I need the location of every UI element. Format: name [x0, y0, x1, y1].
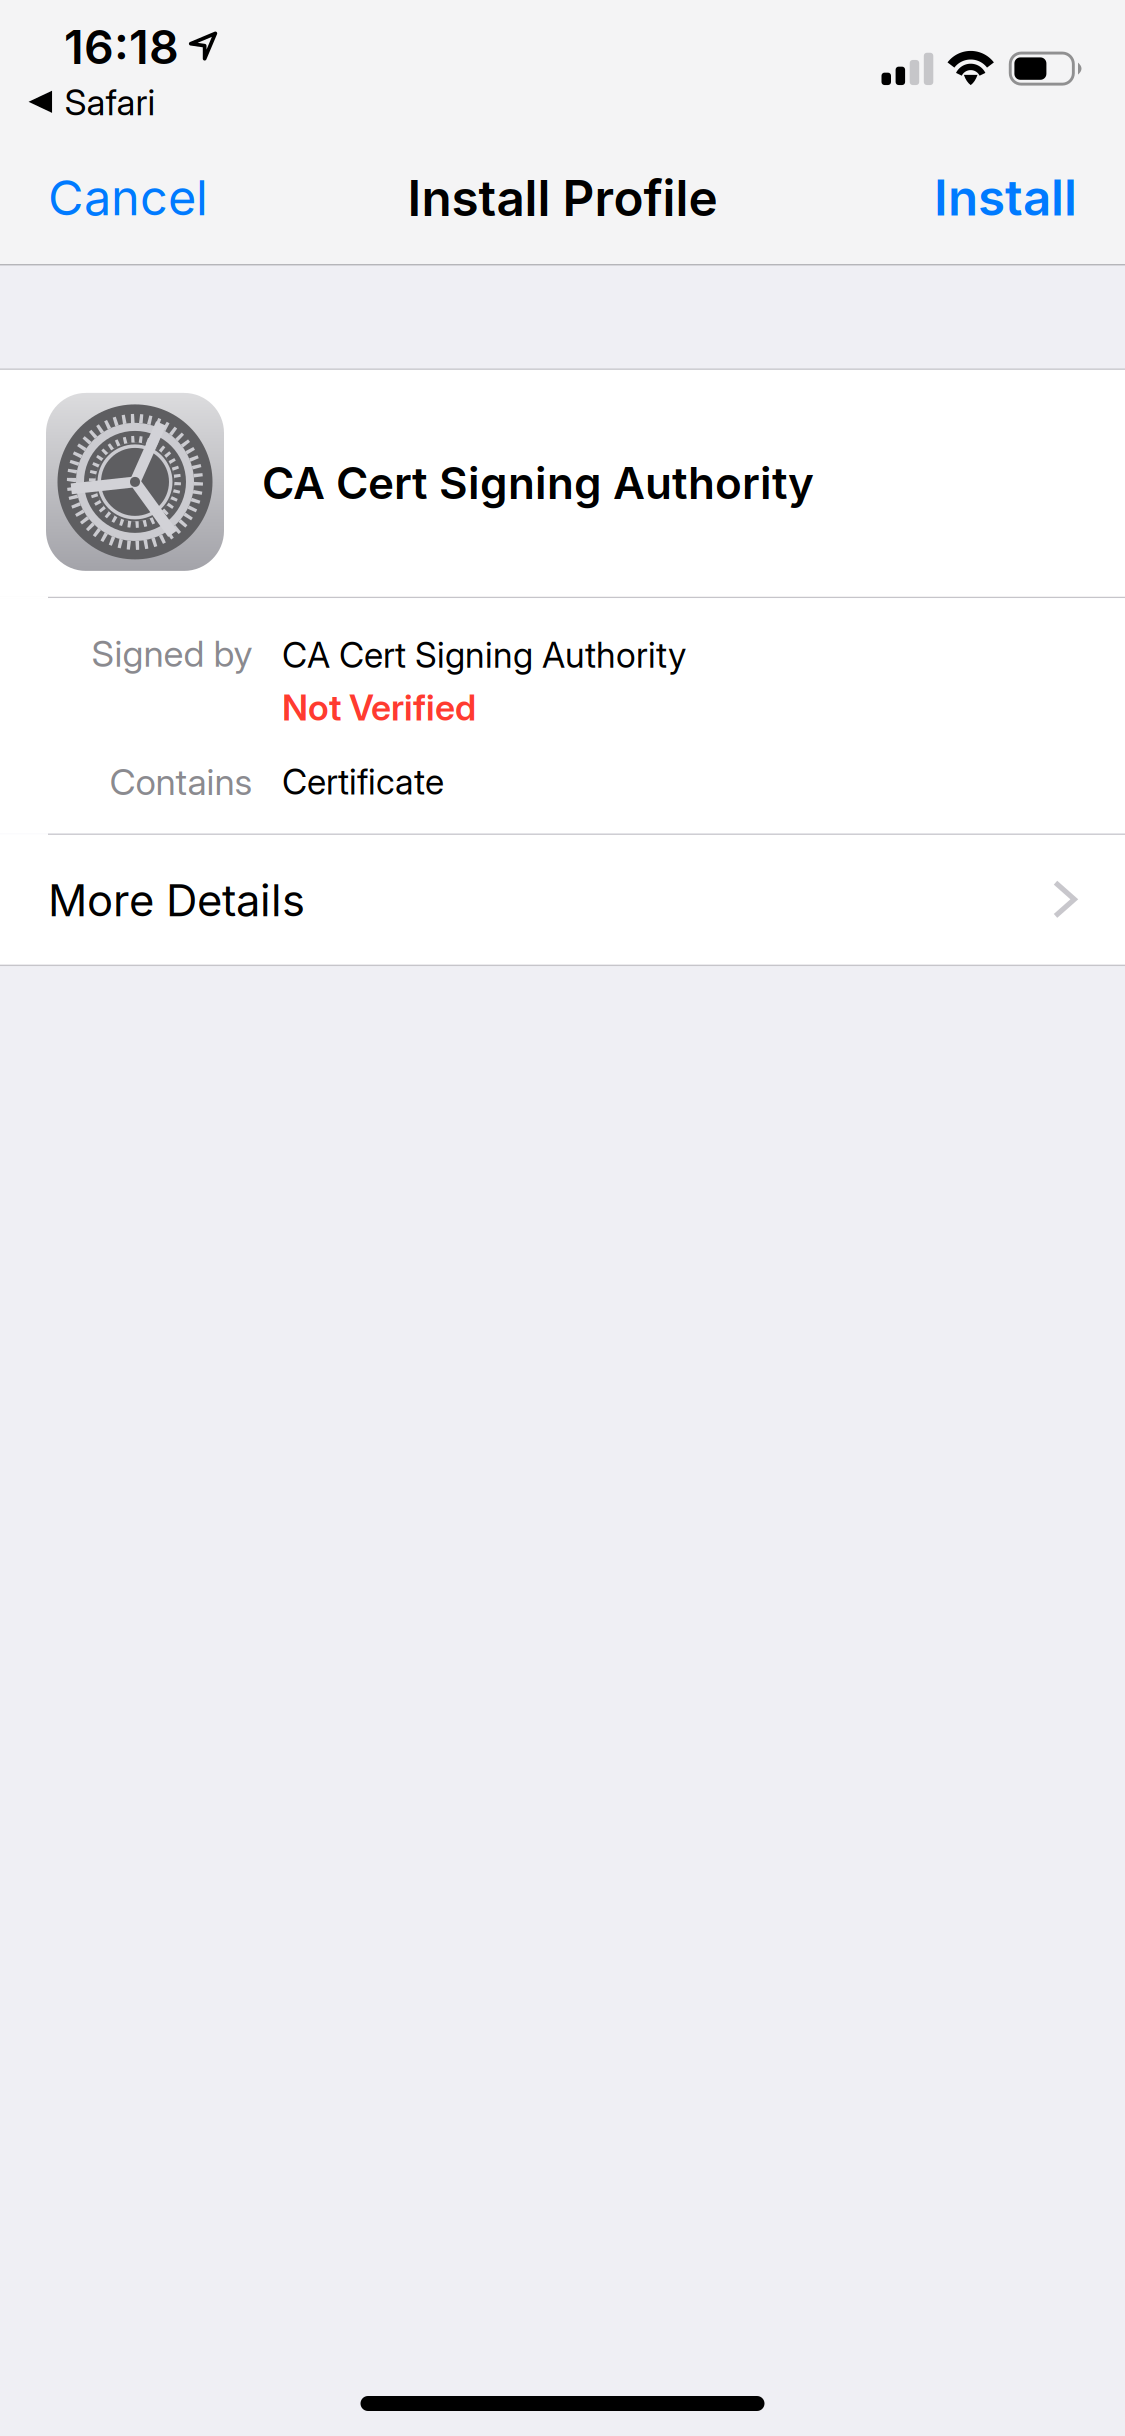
- button[interactable]: Install: [867, 131, 1125, 263]
- staticText: More Details: [48, 874, 305, 927]
- staticText: 16:18: [64, 19, 179, 75]
- staticText: Contains: [109, 760, 252, 804]
- staticText: CA Cert Signing Authority: [282, 634, 686, 676]
- button[interactable]: More Details: [0, 835, 1125, 965]
- staticText: Safari: [64, 81, 155, 124]
- staticText: Certificate: [282, 761, 444, 803]
- staticText: Not Verified: [282, 686, 476, 729]
- staticText: Install: [934, 168, 1077, 227]
- button[interactable]: Cancel: [0, 131, 258, 263]
- staticText: Signed by: [91, 632, 252, 675]
- staticText: CA Cert Signing Authority: [262, 456, 814, 509]
- staticText: Cancel: [48, 168, 208, 227]
- staticText: Install Profile: [407, 168, 717, 228]
